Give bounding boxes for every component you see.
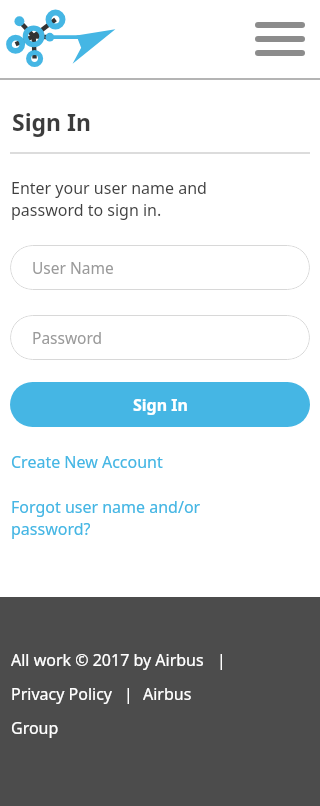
button[interactable]: Forgot user name and/or password?: [0, 494, 320, 542]
button[interactable]: Home: [8, 8, 122, 70]
staticText: Enter your user name and password to sig…: [11, 177, 207, 221]
staticText: Sign In: [12, 106, 91, 137]
button[interactable]: Sign In: [10, 382, 310, 427]
button[interactable]: User Name: [10, 245, 310, 290]
button[interactable]: Menu: [253, 16, 307, 62]
staticText: |: [217, 649, 226, 671]
staticText: User Name: [32, 257, 114, 278]
staticText: All work © 2017 by Airbus: [11, 649, 204, 671]
staticText: Privacy Policy: [11, 683, 112, 705]
staticText: Group: [11, 717, 59, 739]
staticText: |: [124, 683, 133, 705]
staticText: Create New Account: [11, 451, 163, 473]
button[interactable]: Privacy Policy: [11, 683, 112, 705]
staticText: Airbus: [143, 683, 192, 705]
button[interactable]: Group: [11, 717, 59, 739]
button[interactable]: Password: [10, 315, 310, 360]
staticText: Password: [32, 327, 103, 348]
staticText: Forgot user name and/or password?: [11, 496, 201, 540]
staticText: Sign In: [133, 394, 188, 416]
button[interactable]: Create New Account: [0, 449, 320, 475]
